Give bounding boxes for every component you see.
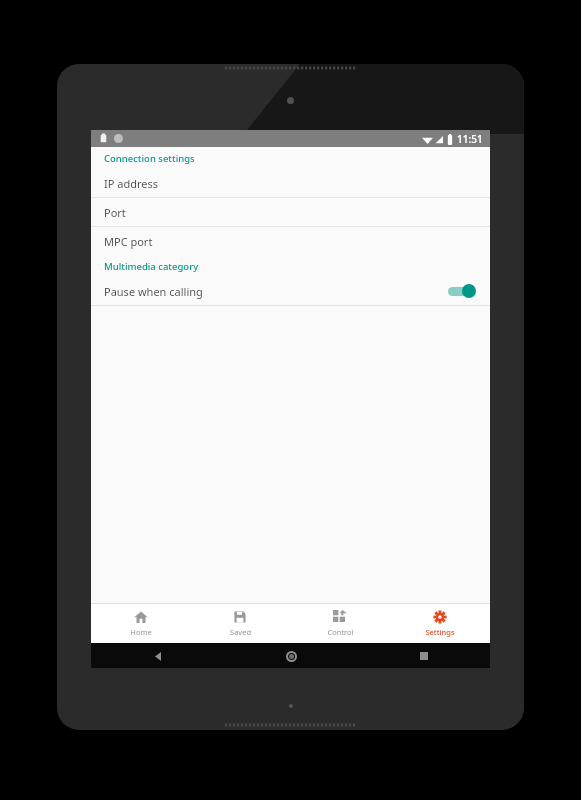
staticText: Home <box>130 627 152 637</box>
button[interactable]: Pause when calling <box>91 277 490 305</box>
button[interactable]: MPC port <box>91 227 490 255</box>
staticText: Connection settings <box>104 152 195 165</box>
button[interactable]: Control <box>290 604 390 643</box>
staticText: 11:51 <box>457 132 483 146</box>
staticText: Port <box>104 205 126 220</box>
staticText: Control <box>327 627 354 637</box>
staticText: Pause when calling <box>104 284 448 299</box>
button[interactable]: Home <box>91 604 190 643</box>
button[interactable]: IP address <box>91 169 490 197</box>
staticText: Settings <box>425 627 455 637</box>
staticText: MPC port <box>104 234 153 249</box>
button[interactable]: Port <box>91 198 490 226</box>
staticText: Multimedia category <box>104 260 199 273</box>
staticText: IP address <box>104 176 159 191</box>
staticText: Saved <box>230 627 251 637</box>
button[interactable]: Settings <box>390 604 490 643</box>
button[interactable]: Home <box>282 647 300 665</box>
button[interactable]: Recent apps <box>415 647 433 665</box>
button[interactable]: Saved <box>190 604 290 643</box>
other: Settings <box>433 610 447 624</box>
button[interactable]: Back <box>149 647 167 665</box>
